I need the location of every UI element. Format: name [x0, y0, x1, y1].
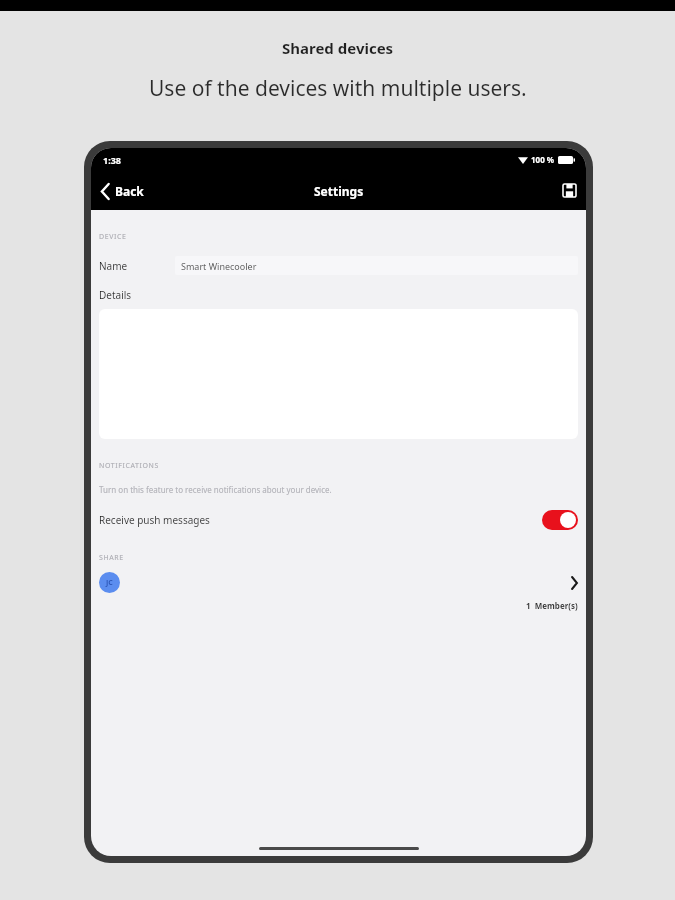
button[interactable]: JC	[99, 572, 578, 593]
staticText: 1 Member(s)	[526, 600, 578, 611]
button[interactable]: Back	[91, 177, 154, 205]
staticText: Use of the devices with multiple users.	[149, 74, 527, 103]
staticText: Name	[99, 259, 175, 273]
staticText: JC	[106, 578, 113, 588]
staticText: Settings	[314, 183, 364, 199]
staticText: 100 %	[531, 154, 555, 165]
button[interactable]: Receive push messages	[99, 507, 578, 533]
staticText: DEVICE	[99, 232, 127, 242]
staticText: NOTIFICATIONS	[99, 461, 159, 471]
staticText: Turn on this feature to receive notifica…	[99, 484, 332, 495]
staticText: Details	[99, 288, 132, 302]
button[interactable]: Save	[553, 174, 586, 207]
staticText: SHARE	[99, 553, 124, 563]
staticText: Smart Winecooler	[181, 260, 257, 272]
staticText: 1:38	[103, 154, 121, 166]
button[interactable]: Smart Winecooler	[175, 256, 578, 275]
staticText: Receive push messages	[99, 513, 210, 527]
staticText: Shared devices	[282, 38, 394, 58]
staticText: Back	[115, 183, 144, 199]
